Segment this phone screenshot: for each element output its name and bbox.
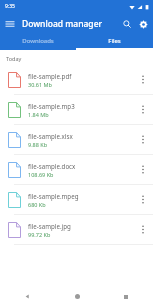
staticText: 1.84 Mb [28, 111, 49, 118]
staticText: file-sample.pdf [28, 72, 72, 80]
staticText: Files [108, 37, 121, 45]
button[interactable]: Open navigation menu [3, 17, 17, 31]
button[interactable]: Back [18, 288, 36, 305]
staticText: Downloads [22, 37, 54, 45]
staticText: file-sample.xlsx [28, 132, 73, 140]
button[interactable]: Home [68, 288, 86, 305]
button[interactable]: More options [133, 125, 153, 154]
button[interactable]: file-sample.pdf [0, 65, 153, 94]
staticText: file-sample.jpg [28, 222, 71, 230]
staticText: 9:35 [5, 3, 15, 10]
button[interactable]: file-sample.mp3 [0, 95, 153, 124]
staticText: 9.88 Kb [28, 141, 48, 148]
staticText: Download manager [22, 18, 103, 30]
staticText: file-sample.mp3 [28, 102, 75, 110]
button[interactable]: More options [133, 95, 153, 124]
button[interactable]: More options [133, 155, 153, 184]
button[interactable]: file-sample.xlsx [0, 125, 153, 154]
button[interactable]: Search [119, 16, 135, 32]
button[interactable]: More options [133, 215, 153, 244]
button[interactable]: file-sample.jpg [0, 215, 153, 244]
staticText: 108.69 Kb [28, 171, 54, 178]
staticText: file-sample.docx [28, 162, 76, 170]
staticText: 680 Kb [28, 201, 46, 208]
button[interactable]: More options [133, 65, 153, 94]
button[interactable]: Settings [135, 16, 151, 32]
button[interactable]: file-sample.docx [0, 155, 153, 184]
staticText: Today [6, 55, 22, 62]
button[interactable]: Downloads [0, 34, 76, 48]
staticText: file-sample.mpeg [28, 192, 79, 200]
button[interactable]: Recent apps [117, 288, 135, 305]
staticText: 99.72 Kb [28, 231, 51, 238]
button[interactable]: More options [133, 185, 153, 214]
button[interactable]: file-sample.mpeg [0, 185, 153, 214]
button[interactable]: Files [76, 34, 153, 48]
staticText: 30.61 Mb [28, 81, 52, 88]
